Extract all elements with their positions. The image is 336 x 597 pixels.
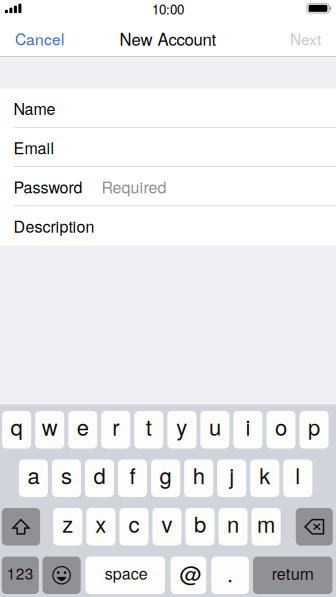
staticText: Name xyxy=(13,97,55,120)
button[interactable]: v xyxy=(152,508,181,545)
staticText: space xyxy=(105,561,148,584)
button[interactable]: n xyxy=(219,508,248,545)
staticText: m xyxy=(257,508,275,539)
button[interactable]: y xyxy=(167,411,196,448)
staticText: y xyxy=(176,411,187,442)
button[interactable]: a xyxy=(19,459,48,497)
button[interactable]: Shift xyxy=(2,508,40,545)
staticText: Next xyxy=(290,27,321,49)
button[interactable]: z xyxy=(53,508,82,545)
button[interactable]: i xyxy=(233,411,262,448)
staticText: k xyxy=(259,459,270,491)
staticText: . xyxy=(227,557,233,589)
staticText: p xyxy=(308,411,320,442)
staticText: w xyxy=(42,411,58,442)
staticText: n xyxy=(227,508,239,539)
staticText: 10:00 xyxy=(152,0,184,18)
staticText: z xyxy=(62,508,73,539)
staticText: Required xyxy=(101,175,166,198)
button[interactable]: x xyxy=(86,508,115,545)
staticText: i xyxy=(245,411,250,442)
staticText: d xyxy=(93,459,105,491)
button[interactable]: return xyxy=(253,556,332,594)
button[interactable]: k xyxy=(250,459,279,497)
staticText: o xyxy=(275,411,287,442)
staticText: t xyxy=(146,411,152,442)
staticText: Cancel xyxy=(15,27,64,49)
button[interactable]: b xyxy=(185,508,214,545)
button[interactable]: f xyxy=(118,459,147,497)
button[interactable]: o xyxy=(266,411,295,448)
button[interactable]: 123 xyxy=(2,556,39,594)
button[interactable]: j xyxy=(217,459,246,497)
staticText: q xyxy=(11,411,23,442)
button[interactable]: Next xyxy=(288,20,323,56)
staticText: j xyxy=(229,459,234,491)
staticText: u xyxy=(209,411,221,442)
button[interactable]: Emoji xyxy=(42,556,81,594)
staticText: v xyxy=(161,508,172,539)
staticText: l xyxy=(295,459,300,491)
button[interactable]: Description xyxy=(0,206,336,245)
button[interactable]: q xyxy=(2,411,31,448)
button[interactable]: . xyxy=(211,556,249,594)
button[interactable]: Cancel xyxy=(13,20,66,56)
button[interactable]: m xyxy=(252,508,281,545)
button[interactable]: g xyxy=(151,459,180,497)
staticText: b xyxy=(194,508,206,539)
staticText: return xyxy=(272,561,314,584)
button[interactable]: p xyxy=(300,411,329,448)
button[interactable]: e xyxy=(68,411,97,448)
staticText: Description xyxy=(13,214,94,237)
button[interactable]: Password xyxy=(0,167,336,206)
staticText: a xyxy=(27,459,39,491)
staticText: r xyxy=(112,411,119,442)
staticText: Email xyxy=(13,136,54,159)
staticText: f xyxy=(129,459,135,491)
button[interactable]: space xyxy=(86,556,165,594)
button[interactable]: w xyxy=(35,411,64,448)
button[interactable]: Email xyxy=(0,128,336,167)
button[interactable]: h xyxy=(184,459,213,497)
button[interactable]: s xyxy=(52,459,81,497)
staticText: e xyxy=(77,411,89,442)
staticText: Password xyxy=(13,175,82,198)
button[interactable]: d xyxy=(85,459,114,497)
staticText: c xyxy=(128,508,139,539)
button[interactable]: r xyxy=(101,411,130,448)
button[interactable]: Delete xyxy=(296,508,333,545)
button[interactable]: u xyxy=(200,411,229,448)
staticText: @ xyxy=(179,557,201,589)
staticText: g xyxy=(160,459,172,491)
button[interactable]: @ xyxy=(171,556,206,594)
staticText: s xyxy=(61,459,72,491)
button[interactable]: t xyxy=(134,411,163,448)
button[interactable]: l xyxy=(283,459,312,497)
staticText: h xyxy=(193,459,205,491)
button[interactable]: Name xyxy=(0,88,336,128)
staticText: 123 xyxy=(7,562,34,584)
button[interactable]: c xyxy=(119,508,148,545)
staticText: x xyxy=(95,508,106,539)
staticText: New Account xyxy=(119,27,216,50)
